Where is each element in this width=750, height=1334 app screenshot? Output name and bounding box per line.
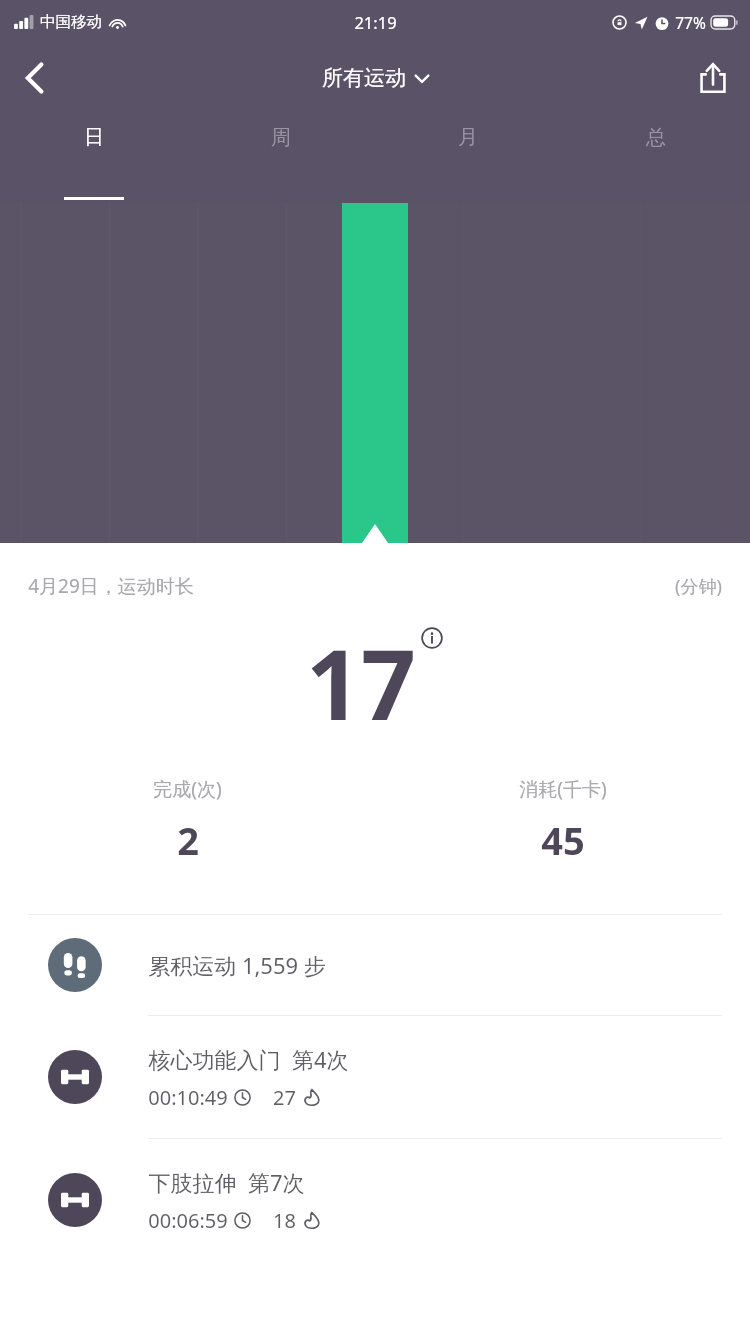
staticText: 2: [177, 814, 199, 866]
button[interactable]: 总: [562, 112, 750, 203]
staticText: 00:06:59: [148, 1207, 228, 1234]
staticText: 下肢拉伸 第7次: [148, 1167, 305, 1197]
staticText: 核心功能入门 第4次: [148, 1044, 349, 1074]
staticText: 21:19: [354, 11, 397, 33]
staticText: 完成(次): [153, 776, 222, 802]
button[interactable]: 月: [374, 112, 562, 203]
button[interactable]: Share: [686, 51, 740, 105]
staticText: 17: [306, 617, 416, 748]
staticText: 日: [84, 125, 104, 150]
staticText: 45: [541, 814, 585, 866]
staticText: 77%: [675, 12, 706, 33]
button[interactable]: 核心功能入门 第4次: [0, 1016, 750, 1138]
staticText: 周: [271, 125, 291, 150]
button[interactable]: 日: [0, 112, 187, 203]
staticText: (分钟): [675, 574, 722, 599]
staticText: 4月29日，运动时长: [28, 573, 194, 599]
staticText: 18: [273, 1207, 296, 1234]
staticText: 中国移动: [40, 12, 102, 32]
staticText: 累积运动 1,559 步: [148, 950, 326, 980]
button[interactable]: 所有运动: [322, 65, 429, 91]
button[interactable]: 完成(次): [0, 776, 375, 866]
button[interactable]: 下肢拉伸 第7次: [0, 1139, 750, 1261]
button[interactable]: 累积运动 1,559 步: [0, 915, 750, 1015]
button[interactable]: Back: [8, 51, 62, 105]
staticText: 月: [458, 125, 478, 150]
button[interactable]: Info: [419, 625, 444, 650]
staticText: 消耗(千卡): [519, 776, 607, 802]
staticText: 所有运动: [322, 65, 406, 91]
staticText: 27: [273, 1084, 296, 1111]
staticText: 00:10:49: [148, 1084, 228, 1111]
staticText: 总: [646, 125, 666, 150]
button[interactable]: 周: [187, 112, 374, 203]
button[interactable]: 消耗(千卡): [375, 776, 750, 866]
